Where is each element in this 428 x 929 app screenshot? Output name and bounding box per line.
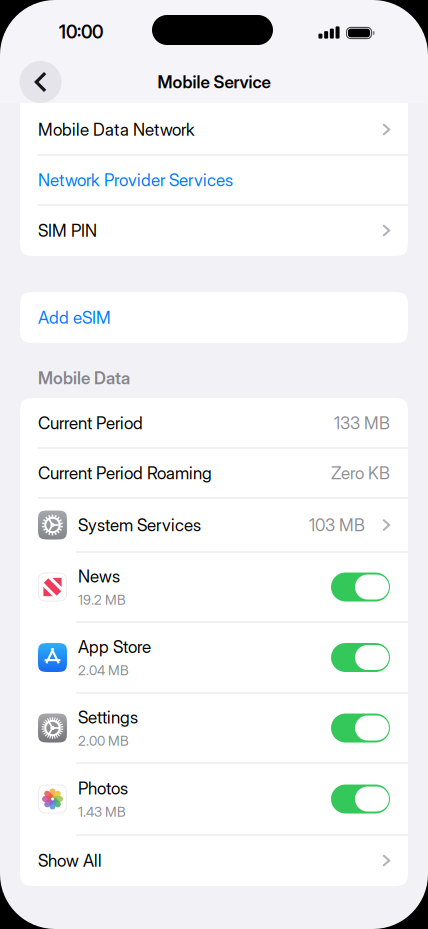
staticText: Show All (38, 850, 102, 871)
staticText: Mobile Service (157, 72, 270, 92)
button[interactable]: Mobile Data Network (20, 104, 408, 155)
staticText: Photos (78, 778, 128, 799)
staticText: 1.43 MB (78, 804, 126, 820)
button[interactable]: App Store (331, 643, 390, 672)
button[interactable]: Network Provider Services (20, 155, 408, 205)
staticText: Mobile Data Network (38, 119, 195, 140)
staticText: Mobile Data (38, 368, 130, 388)
button[interactable]: Settings (331, 713, 390, 742)
staticText: System Services (78, 515, 201, 535)
button[interactable]: Add eSIM (20, 292, 408, 343)
staticText: App Store (78, 636, 151, 657)
button[interactable]: Photos (331, 784, 390, 813)
staticText: 10:00 (59, 21, 103, 43)
button[interactable]: Current Period (20, 398, 408, 448)
button[interactable]: Back (19, 61, 61, 103)
staticText: Settings (78, 707, 138, 728)
staticText: 19.2 MB (78, 592, 126, 608)
staticText: Add eSIM (38, 307, 111, 328)
staticText: 133 MB (334, 413, 390, 433)
button[interactable]: Current Period Roaming (20, 448, 408, 498)
button[interactable]: SIM PIN (20, 205, 408, 256)
staticText: 2.00 MB (78, 733, 129, 749)
button[interactable]: News (331, 572, 390, 601)
staticText: SIM PIN (38, 220, 97, 241)
staticText: News (78, 566, 120, 587)
staticText: 2.04 MB (78, 662, 129, 678)
staticText: Current Period (38, 413, 143, 433)
staticText: 103 MB (309, 515, 365, 535)
button[interactable]: Show All (20, 835, 408, 886)
staticText: Network Provider Services (38, 170, 233, 190)
staticText: Zero KB (331, 463, 390, 483)
staticText: Current Period Roaming (38, 463, 212, 483)
button[interactable]: System Services (20, 498, 408, 552)
